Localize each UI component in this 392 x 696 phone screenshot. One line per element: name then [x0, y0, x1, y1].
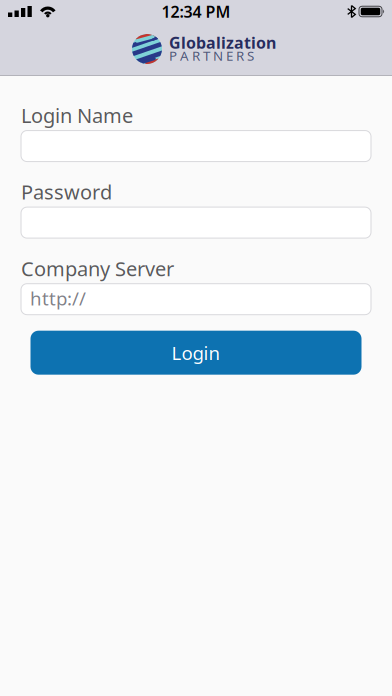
staticText: Login Name — [21, 102, 133, 129]
staticText: 12:34 PM — [161, 1, 230, 22]
staticText: Company Server — [21, 255, 174, 282]
button[interactable]: Server URL text field — [21, 284, 371, 315]
button[interactable]: Login — [30, 331, 361, 375]
staticText: Login — [171, 340, 220, 365]
staticText: http:// — [30, 286, 86, 311]
staticText: P A R T N E R S — [169, 47, 254, 64]
staticText: Globalization — [169, 32, 276, 53]
button[interactable]: Text field — [21, 131, 371, 162]
staticText: Password — [21, 179, 112, 205]
button[interactable]: Text field — [21, 207, 371, 238]
